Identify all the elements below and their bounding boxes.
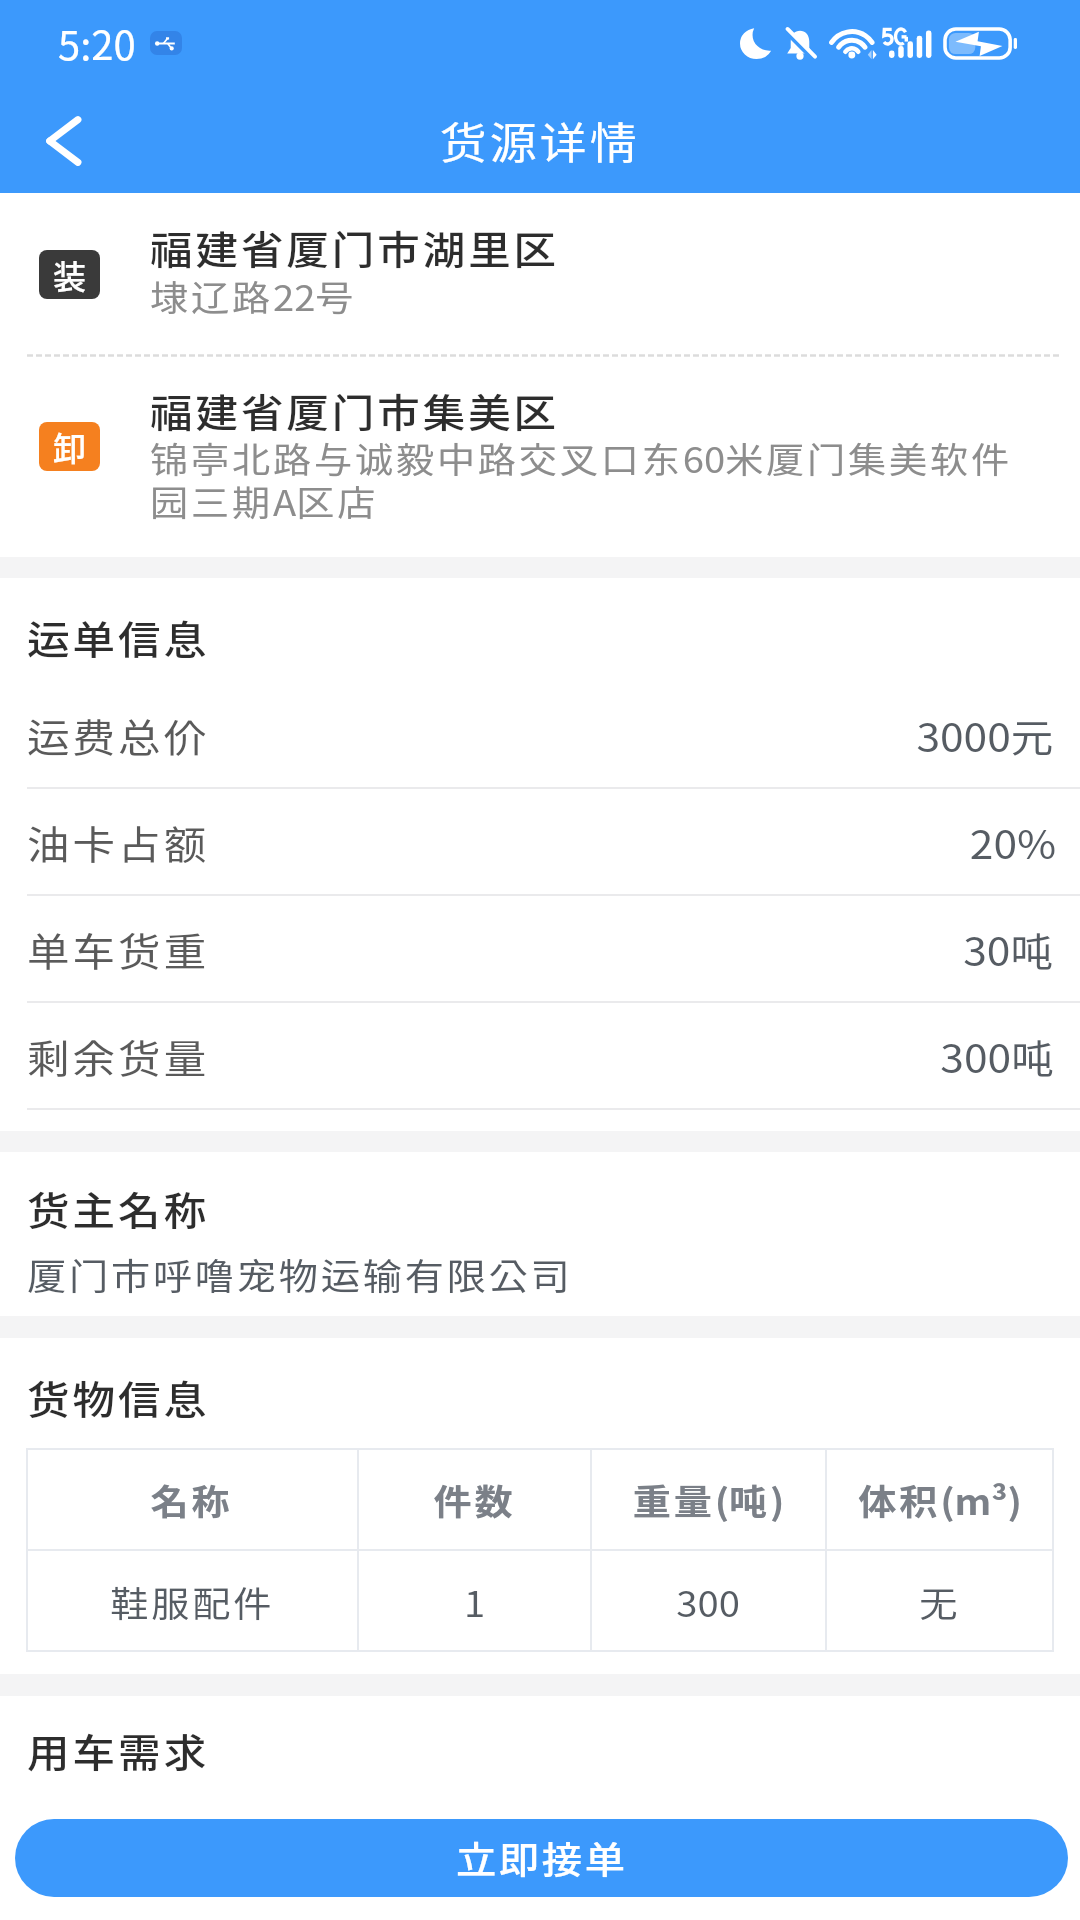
- staticText: 重量(吨): [633, 1474, 785, 1525]
- staticText: 3000元: [916, 707, 1057, 763]
- button[interactable]: Back: [0, 86, 110, 193]
- staticText: 油卡占额: [27, 814, 210, 870]
- staticText: 货物信息: [27, 1369, 210, 1425]
- staticText: 货主名称: [27, 1180, 210, 1236]
- staticText: 福建省厦门市集美区: [150, 382, 560, 438]
- staticText: 20%: [970, 814, 1057, 870]
- staticText: 埭辽路22号: [150, 270, 357, 321]
- staticText: 卸: [53, 423, 86, 471]
- staticText: 运单信息: [27, 609, 210, 665]
- staticText: 300吨: [940, 1028, 1057, 1084]
- staticText: 运费总价: [27, 707, 210, 763]
- staticText: 厦门市呼噜宠物运输有限公司: [27, 1248, 573, 1300]
- button[interactable]: 装: [0, 193, 1080, 355]
- button[interactable]: 卸: [0, 358, 1080, 557]
- staticText: 300: [676, 1576, 741, 1627]
- staticText: 立即接单: [456, 1831, 628, 1885]
- staticText: 剩余货量: [27, 1028, 210, 1084]
- staticText: 5:20: [58, 14, 136, 72]
- staticText: 名称: [151, 1474, 233, 1525]
- staticText: 无: [919, 1576, 961, 1627]
- staticText: 货源详情: [440, 109, 640, 171]
- staticText: 福建省厦门市湖里区: [150, 219, 560, 275]
- staticText: 单车货重: [27, 921, 210, 977]
- staticText: 件数: [434, 1474, 516, 1525]
- staticText: 30吨: [963, 921, 1057, 977]
- button[interactable]: 立即接单: [15, 1819, 1068, 1897]
- staticText: 用车需求: [27, 1722, 210, 1778]
- staticText: 体积(m³): [858, 1474, 1023, 1525]
- staticText: 鞋服配件: [110, 1576, 275, 1627]
- staticText: 装: [53, 251, 86, 299]
- staticText: 1: [464, 1576, 486, 1627]
- staticText: 锦亭北路与诚毅中路交叉口东60米厦门集美软件园三期A区店: [150, 432, 1052, 526]
